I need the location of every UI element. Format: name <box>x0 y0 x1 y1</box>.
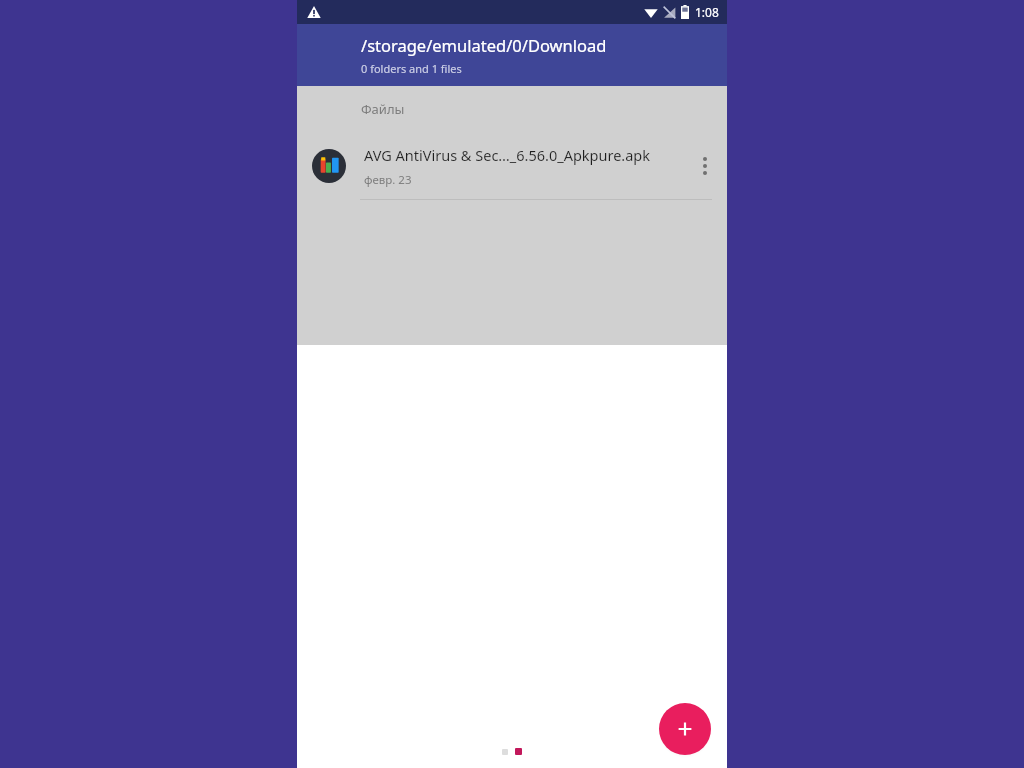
button[interactable]: Add <box>659 703 711 755</box>
button[interactable]: More options <box>683 132 727 200</box>
button[interactable]: AVG AntiVirus & Sec…_6.56.0_Apkpure.apk <box>297 132 727 200</box>
staticText: 1:08 <box>695 4 719 20</box>
staticText: Файлы <box>361 100 405 118</box>
staticText: 0 folders and 1 files <box>361 61 462 76</box>
staticText: AVG AntiVirus & Sec…_6.56.0_Apkpure.apk <box>364 145 651 165</box>
staticText: февр. 23 <box>364 172 412 188</box>
staticText: /storage/emulated/0/Download <box>361 34 607 56</box>
